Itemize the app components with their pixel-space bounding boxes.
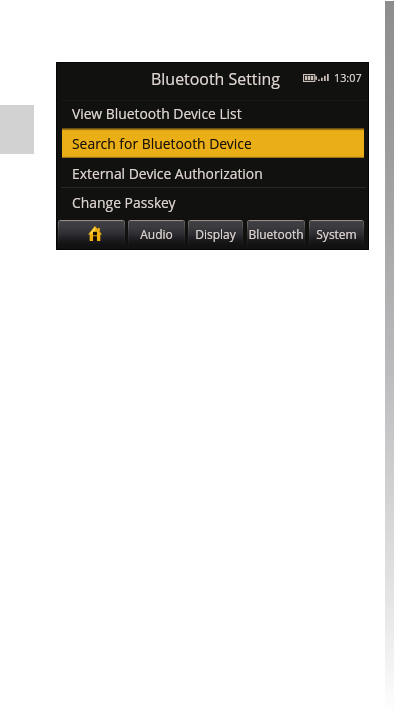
staticText: Change Passkey bbox=[72, 193, 176, 212]
button[interactable]: System bbox=[309, 220, 364, 247]
button[interactable]: Bluetooth bbox=[247, 220, 305, 247]
button[interactable]: Audio bbox=[128, 220, 185, 247]
staticText: External Device Authorization bbox=[72, 164, 263, 183]
button[interactable]: Home bbox=[58, 220, 125, 247]
staticText: Search for Bluetooth Device bbox=[72, 134, 252, 153]
button[interactable]: External Device Authorization bbox=[56, 158, 369, 188]
staticText: Bluetooth Setting bbox=[151, 68, 280, 90]
staticText: 13:07 bbox=[334, 70, 362, 85]
staticText: Display bbox=[195, 226, 236, 242]
button[interactable]: Search for Bluetooth Device bbox=[56, 128, 369, 158]
staticText: Search for Bluetooth Device bbox=[72, 134, 252, 153]
button[interactable]: View Bluetooth Device List bbox=[56, 100, 369, 127]
button[interactable]: Change Passkey bbox=[56, 187, 369, 217]
staticText: Bluetooth bbox=[248, 226, 304, 242]
button[interactable]: Display bbox=[188, 220, 243, 247]
staticText: System bbox=[316, 226, 357, 242]
staticText: Audio bbox=[140, 226, 173, 242]
staticText: View Bluetooth Device List bbox=[72, 104, 242, 123]
